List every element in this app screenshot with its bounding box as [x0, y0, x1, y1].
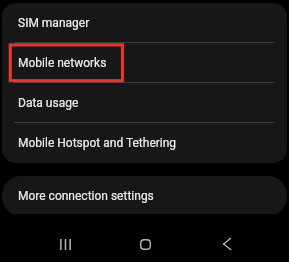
staticText: More connection settings: [18, 189, 154, 203]
staticText: Mobile Hotspot and Tethering: [18, 136, 177, 150]
staticText: Mobile networks: [18, 56, 107, 70]
button[interactable]: Data usage: [2, 83, 287, 123]
button[interactable]: Back: [207, 224, 247, 262]
button[interactable]: Home: [125, 224, 165, 262]
button[interactable]: Recent apps: [45, 224, 85, 262]
button[interactable]: More connection settings: [2, 176, 287, 216]
button[interactable]: Mobile Hotspot and Tethering: [2, 123, 287, 163]
button[interactable]: SIM manager: [2, 3, 287, 43]
staticText: Data usage: [18, 96, 79, 110]
staticText: SIM manager: [18, 16, 90, 30]
button[interactable]: Mobile networks: [2, 43, 287, 83]
